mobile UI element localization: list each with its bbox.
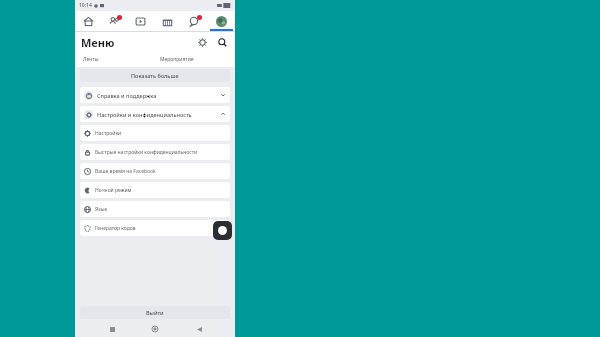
button[interactable]: Home [75, 11, 101, 31]
button[interactable]: Ночной режим [84, 182, 226, 198]
button[interactable]: Быстрые настройки конфиденциальности [84, 144, 226, 160]
staticText: Настройки и конфиденциальность [97, 111, 192, 118]
button[interactable]: Home [148, 322, 162, 336]
staticText: Ваше время на Facebook [95, 168, 156, 175]
staticText: 10:14 [79, 2, 92, 9]
button[interactable]: Настройки [84, 125, 226, 141]
staticText: Ночной режим [95, 187, 132, 194]
staticText: Ленты [83, 56, 99, 63]
button[interactable]: Настройки и конфиденциальность [84, 106, 226, 122]
staticText: Настройки [95, 130, 122, 137]
button[interactable]: Генератор кодов [84, 220, 226, 236]
button[interactable]: Ваше время на Facebook [84, 163, 226, 179]
staticText: Справка и поддержка [97, 92, 157, 99]
button[interactable]: Video [127, 11, 154, 31]
staticText: Мероприятия [160, 56, 194, 63]
button[interactable]: Search [215, 35, 229, 49]
staticText: Быстрые настройки конфиденциальности [95, 149, 198, 156]
button[interactable]: Язык [84, 201, 226, 217]
button[interactable]: Ленты [83, 54, 150, 65]
staticText: Показать больше [131, 72, 179, 79]
button[interactable]: Мероприятия [160, 54, 227, 65]
button[interactable]: Выйти [80, 306, 230, 319]
button[interactable]: Profile [208, 11, 235, 31]
button[interactable]: Screen recorder [213, 221, 232, 240]
staticText: Меню [81, 35, 115, 50]
staticText: Генератор кодов [95, 225, 136, 232]
button[interactable]: Back [192, 322, 206, 336]
button[interactable]: Справка и поддержка [84, 87, 226, 103]
button[interactable]: Notifications [181, 11, 208, 31]
button[interactable]: Marketplace [154, 11, 181, 31]
button[interactable]: Показать больше [80, 69, 230, 82]
staticText: Выйти [146, 309, 164, 316]
button[interactable]: Recents [105, 322, 119, 336]
staticText: Язык [95, 206, 108, 213]
button[interactable]: Friends [101, 11, 127, 31]
button[interactable]: Settings [195, 35, 209, 49]
